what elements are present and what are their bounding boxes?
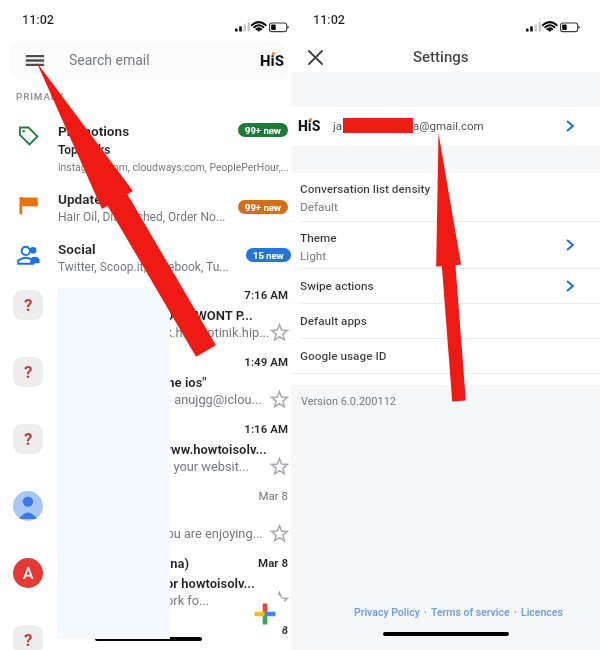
staticText: 11:02 [313,12,345,27]
staticText: 7:16 AM [130,288,288,301]
button[interactable]: Open navigation drawer [11,41,287,80]
staticText: a new visitor it from your websit... [58,459,249,474]
staticText: instagram.com, cloudways.com, PeoplePerH… [58,161,289,173]
staticText: Mar 8 [130,556,288,569]
button[interactable]: Social [0,232,291,278]
button[interactable]: ? [0,274,291,341]
button[interactable]: Updates [0,182,291,228]
staticText: • [420,608,431,617]
staticText: 11:02 [22,12,54,27]
staticText: Google usage ID [300,349,387,363]
staticText: ? [24,362,33,382]
staticText: a guest post idea for howtoisolv... [58,576,255,591]
staticText: Version 6.0.200112 [301,395,397,408]
staticText: Hi, we really hope you are enjoying... [58,526,263,541]
staticText: Default [300,200,338,214]
staticText: ja [333,119,343,132]
staticText: anujgg@icloud.com anujgg@iclou... [58,392,262,407]
button[interactable]: Licences [521,606,563,618]
staticText: Light [300,249,327,263]
button[interactable]: Promotions [0,112,291,170]
button[interactable]: Open navigation drawer [27,55,43,66]
staticText: Social [58,241,96,257]
button[interactable]: Conversation list density [291,173,600,221]
button[interactable]: ? [0,408,291,475]
staticText: ? [24,630,33,650]
button[interactable]: ? [0,609,291,650]
staticText: Anna Kowalsky (Anna) [58,556,190,571]
staticText: 1:16 AM [130,422,288,435]
staticText: okay so why MY HOME WONT P... [58,308,253,323]
staticText: Theme [300,231,337,245]
staticText: 1:49 AM [130,355,288,368]
button[interactable]: Default apps [291,304,600,338]
button[interactable]: ? [0,341,291,408]
staticText: HiS [260,52,285,70]
button[interactable]: Terms of service [431,606,510,618]
staticText: Hair Oil, Dispatched, Order No... [58,210,226,224]
staticText: Twitter, Scoop.it, Facebook, Tu... [58,260,229,274]
button[interactable]: Close [299,41,331,73]
staticText: Top Picks [58,143,111,157]
staticText: Updates [58,191,109,207]
staticText: Search email [69,52,150,68]
staticText: 99+ new [245,202,281,213]
staticText: A [23,564,34,583]
staticText: PRIMARY [16,91,65,102]
staticText: nirvana <hiphoptinik.hiphoptinik.hip... [58,325,270,340]
button[interactable]: Mar 8 [0,475,291,542]
staticText: 99+ new [245,125,281,136]
button[interactable]: Google usage ID [291,339,600,373]
staticText: Settings [413,48,469,66]
staticText: a@gmail.com [413,119,484,132]
staticText: Mar 8 [130,623,288,636]
staticText: • [510,608,521,617]
staticText: Swipe actions [300,279,374,293]
staticText: ? [24,295,33,315]
staticText: Mar 8 [130,489,288,502]
staticText: new comment on www.howtoisolv... [58,442,267,457]
staticText: Hello there, and I work fo... [58,593,210,608]
staticText: 15 new [253,250,284,261]
button[interactable]: Compose [242,591,288,637]
staticText: ? [24,429,33,449]
staticText: for why to update the ios" [58,375,207,390]
button[interactable]: HiS [291,107,600,146]
button[interactable]: Swipe actions [291,269,600,303]
staticText: Promotions [58,123,130,139]
button[interactable]: Theme [291,222,600,268]
button[interactable]: A [0,542,291,609]
staticText: HiS [298,118,321,134]
button[interactable]: Privacy Policy [354,606,420,618]
staticText: Default apps [300,314,367,328]
staticText: Conversation list density [300,182,431,196]
